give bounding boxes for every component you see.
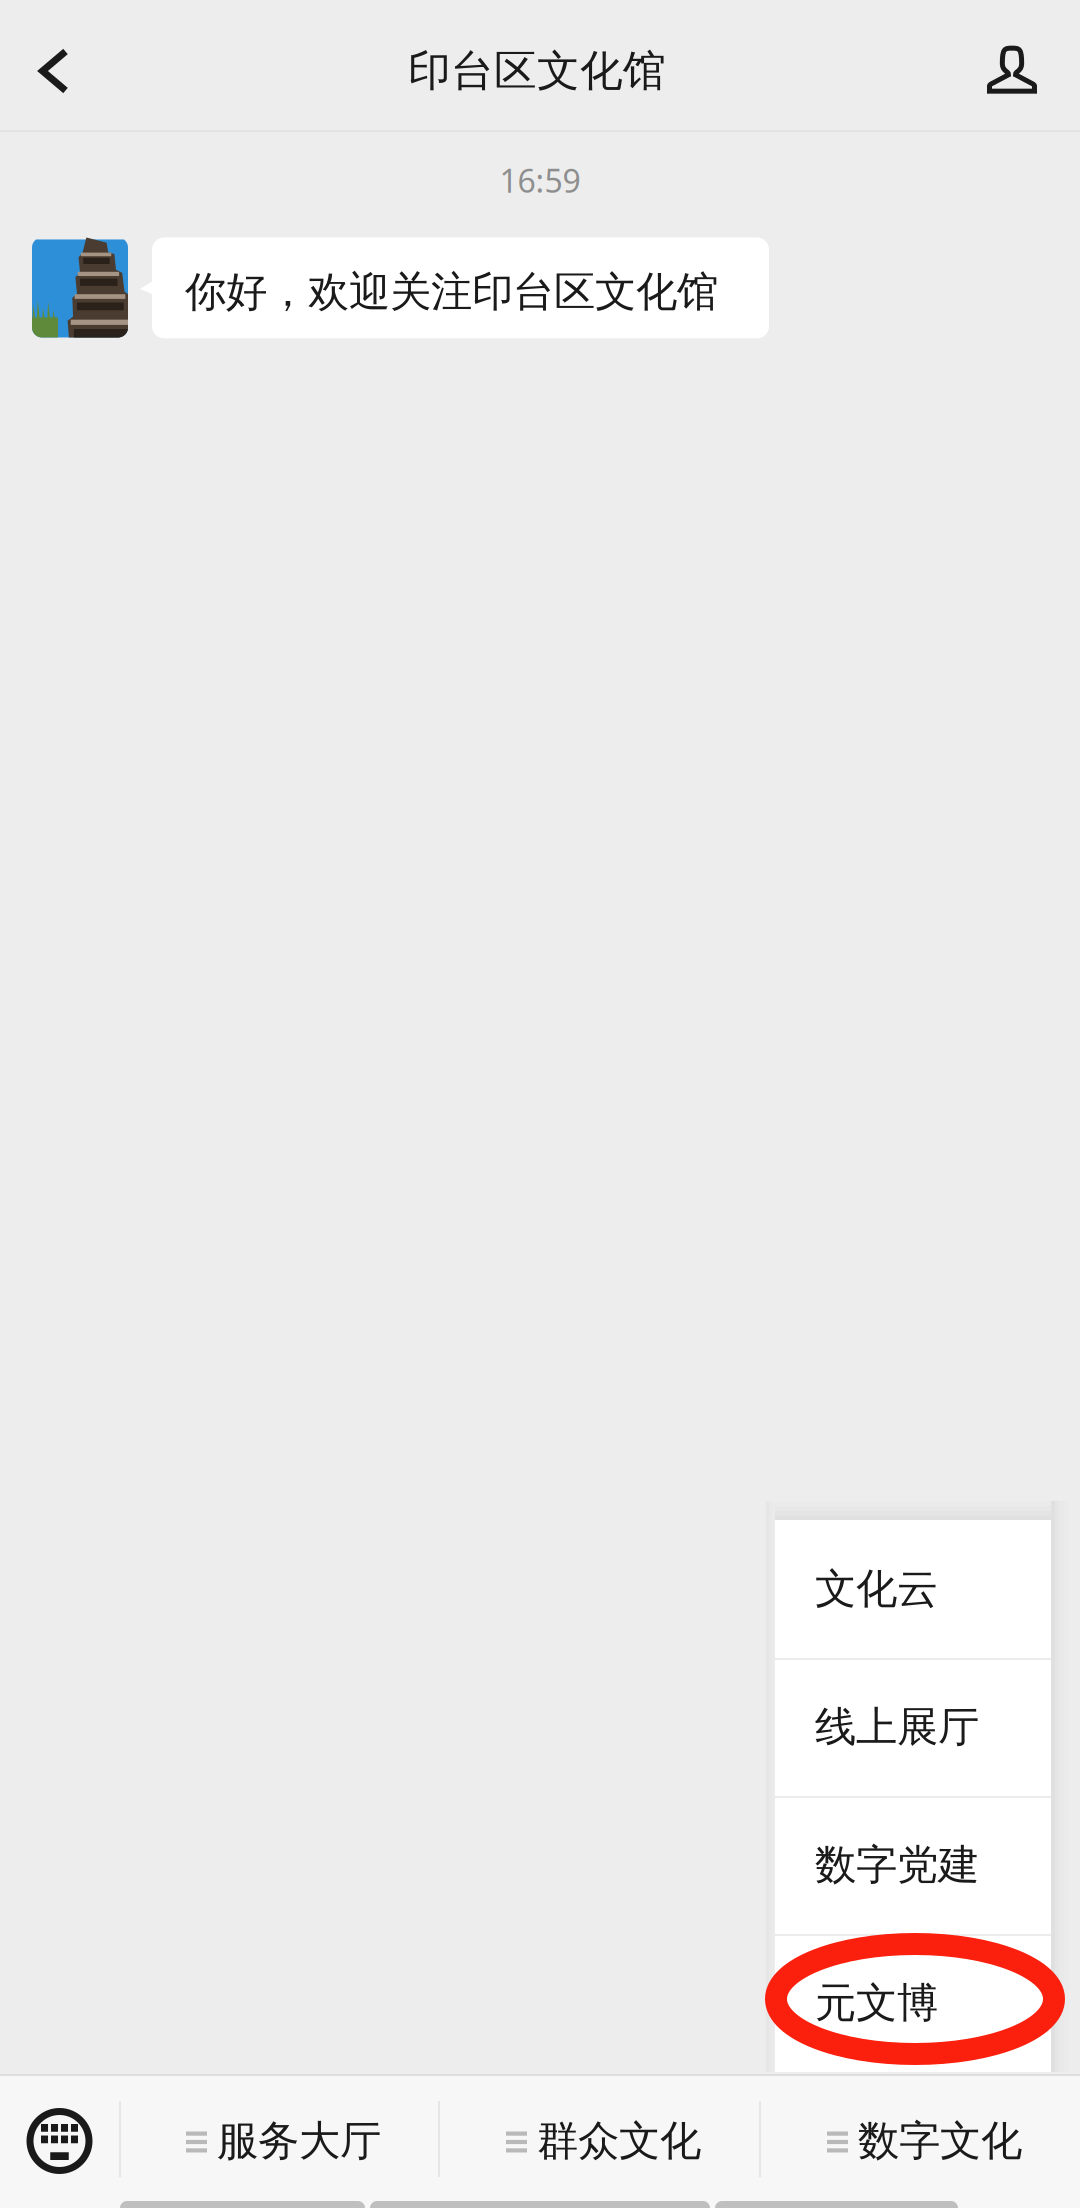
staticText: 线上展厅 — [815, 1702, 979, 1752]
staticText: 16:59 — [499, 159, 580, 201]
staticText: 数字文化 — [858, 2116, 1022, 2166]
staticText: 群众文化 — [537, 2116, 701, 2166]
staticText: 数字党建 — [815, 1840, 979, 1890]
staticText: 服务大厅 — [217, 2116, 381, 2166]
button[interactable]: Back — [0, 0, 100, 130]
staticText: 文化云 — [815, 1564, 938, 1614]
staticText: 印台区文化馆 — [408, 45, 666, 97]
button[interactable]: 群众文化 — [438, 2074, 759, 2208]
button[interactable]: 文化云 — [775, 1520, 1051, 1658]
staticText: 你好，欢迎关注印台区文化馆 — [185, 266, 718, 317]
staticText: 元文博 — [815, 1978, 938, 2028]
button[interactable]: Account profile — [980, 0, 1080, 130]
button[interactable]: 线上展厅 — [775, 1658, 1051, 1796]
button[interactable]: 数字党建 — [775, 1796, 1051, 1934]
button[interactable]: Keyboard — [0, 2074, 119, 2208]
button[interactable]: 服务大厅 — [119, 2074, 438, 2208]
button[interactable]: 数字文化 — [759, 2074, 1080, 2208]
button[interactable]: 元文博 — [775, 1934, 1051, 2072]
